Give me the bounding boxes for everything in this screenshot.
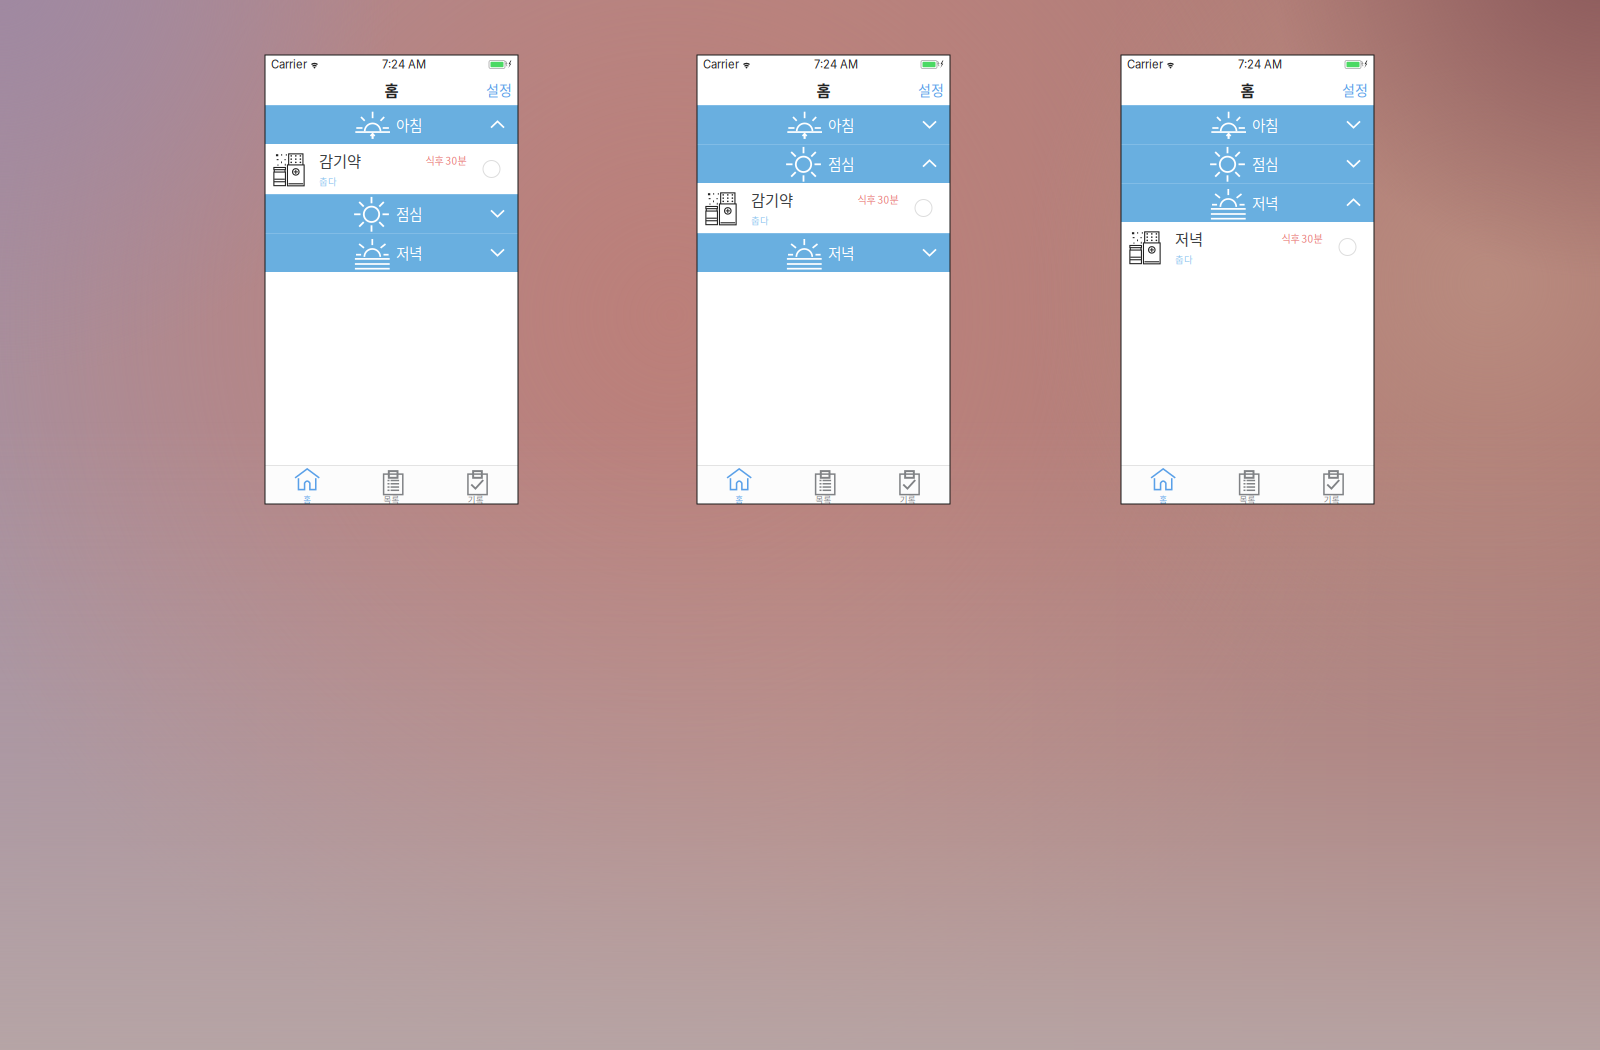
staticText: 7:24 AM	[814, 58, 858, 71]
staticText: 홈	[816, 78, 830, 101]
button[interactable]: 설정	[1336, 75, 1374, 104]
staticText: 설정	[1342, 79, 1368, 100]
staticText: 기록	[468, 493, 484, 505]
button[interactable]: 기록	[1290, 465, 1374, 504]
button[interactable]: 홈	[265, 465, 349, 504]
staticText: 감기약	[319, 149, 361, 171]
staticText: 목록	[815, 493, 831, 505]
button[interactable]: 점심	[265, 194, 518, 233]
button[interactable]: 아침	[697, 105, 950, 144]
staticText: 점심	[396, 203, 422, 224]
staticText: 목록	[1239, 493, 1255, 505]
button[interactable]: 기록	[434, 465, 518, 504]
button[interactable]: 홈	[697, 465, 781, 504]
button[interactable]: 감기약	[697, 183, 950, 233]
staticText: 아침	[828, 114, 854, 135]
staticText: 춥다	[1175, 252, 1193, 266]
staticText: 설정	[918, 79, 944, 100]
button[interactable]: 홈	[1121, 465, 1205, 504]
button[interactable]: 아침	[265, 105, 518, 144]
button[interactable]: 저녁	[265, 233, 518, 272]
staticText: Carrier	[271, 58, 307, 71]
button[interactable]: 저녁	[1121, 222, 1374, 272]
staticText: 춥다	[751, 213, 769, 227]
staticText: 감기약	[751, 188, 793, 210]
staticText: 홈	[384, 78, 398, 101]
staticText: 목록	[383, 493, 399, 505]
button[interactable]: 감기약	[265, 144, 518, 194]
staticText: 7:24 AM	[382, 58, 426, 71]
staticText: 아침	[396, 114, 422, 135]
button[interactable]: 목록	[1205, 465, 1290, 504]
button[interactable]: 저녁	[1121, 183, 1374, 222]
staticText: 식후 30분	[857, 192, 898, 207]
staticText: 점심	[828, 153, 854, 174]
button[interactable]: 설정	[480, 75, 518, 104]
staticText: 저녁	[396, 242, 422, 263]
button[interactable]: 아침	[1121, 105, 1374, 144]
staticText: 홈	[303, 493, 311, 505]
staticText: 홈	[1159, 493, 1167, 505]
staticText: 점심	[1252, 153, 1278, 174]
staticText: 설정	[486, 79, 512, 100]
staticText: 기록	[1324, 493, 1340, 505]
staticText: 저녁	[1252, 192, 1278, 213]
staticText: Carrier	[703, 58, 739, 71]
button[interactable]: 목록	[349, 465, 434, 504]
button[interactable]: 목록	[781, 465, 866, 504]
staticText: 기록	[900, 493, 916, 505]
staticText: 저녁	[828, 242, 854, 263]
staticText: 식후 30분	[1281, 231, 1322, 246]
staticText: 식후 30분	[425, 153, 466, 168]
button[interactable]: 저녁	[697, 233, 950, 272]
staticText: 홈	[1240, 78, 1254, 101]
staticText: 7:24 AM	[1238, 58, 1282, 71]
staticText: 홈	[735, 493, 743, 505]
button[interactable]: 기록	[866, 465, 950, 504]
staticText: 아침	[1252, 114, 1278, 135]
staticText: 저녁	[1175, 227, 1203, 249]
button[interactable]: 설정	[912, 75, 950, 104]
staticText: Carrier	[1127, 58, 1163, 71]
button[interactable]: 점심	[1121, 144, 1374, 183]
button[interactable]: 점심	[697, 144, 950, 183]
staticText: 춥다	[319, 174, 337, 188]
